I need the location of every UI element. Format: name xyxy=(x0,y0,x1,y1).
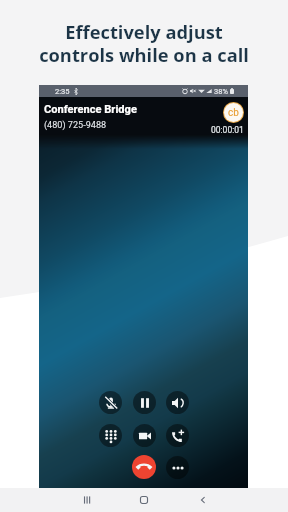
button[interactable]: cb xyxy=(224,103,243,122)
button[interactable]: End call xyxy=(132,455,156,479)
button[interactable]: Add call xyxy=(166,424,189,447)
staticText: 38% xyxy=(214,87,228,96)
button[interactable]: Video call xyxy=(133,424,156,447)
button[interactable]: Recents xyxy=(78,494,96,506)
staticText: Effectively adjust controls while on a c… xyxy=(39,19,249,67)
button[interactable]: Hold xyxy=(133,391,156,414)
button[interactable]: Mute xyxy=(99,391,122,414)
button[interactable]: Dialpad xyxy=(99,424,122,447)
button[interactable]: Home xyxy=(135,494,153,506)
button[interactable]: Back xyxy=(194,494,212,506)
staticText: 00:00:01 xyxy=(211,125,244,135)
button[interactable]: Speaker xyxy=(166,391,189,414)
staticText: cb xyxy=(228,107,239,119)
button[interactable]: More options xyxy=(166,456,189,479)
staticText: (480) 725-9488 xyxy=(44,120,107,131)
staticText: 2:35 xyxy=(55,87,70,96)
staticText: Conference Bridge xyxy=(44,103,137,116)
